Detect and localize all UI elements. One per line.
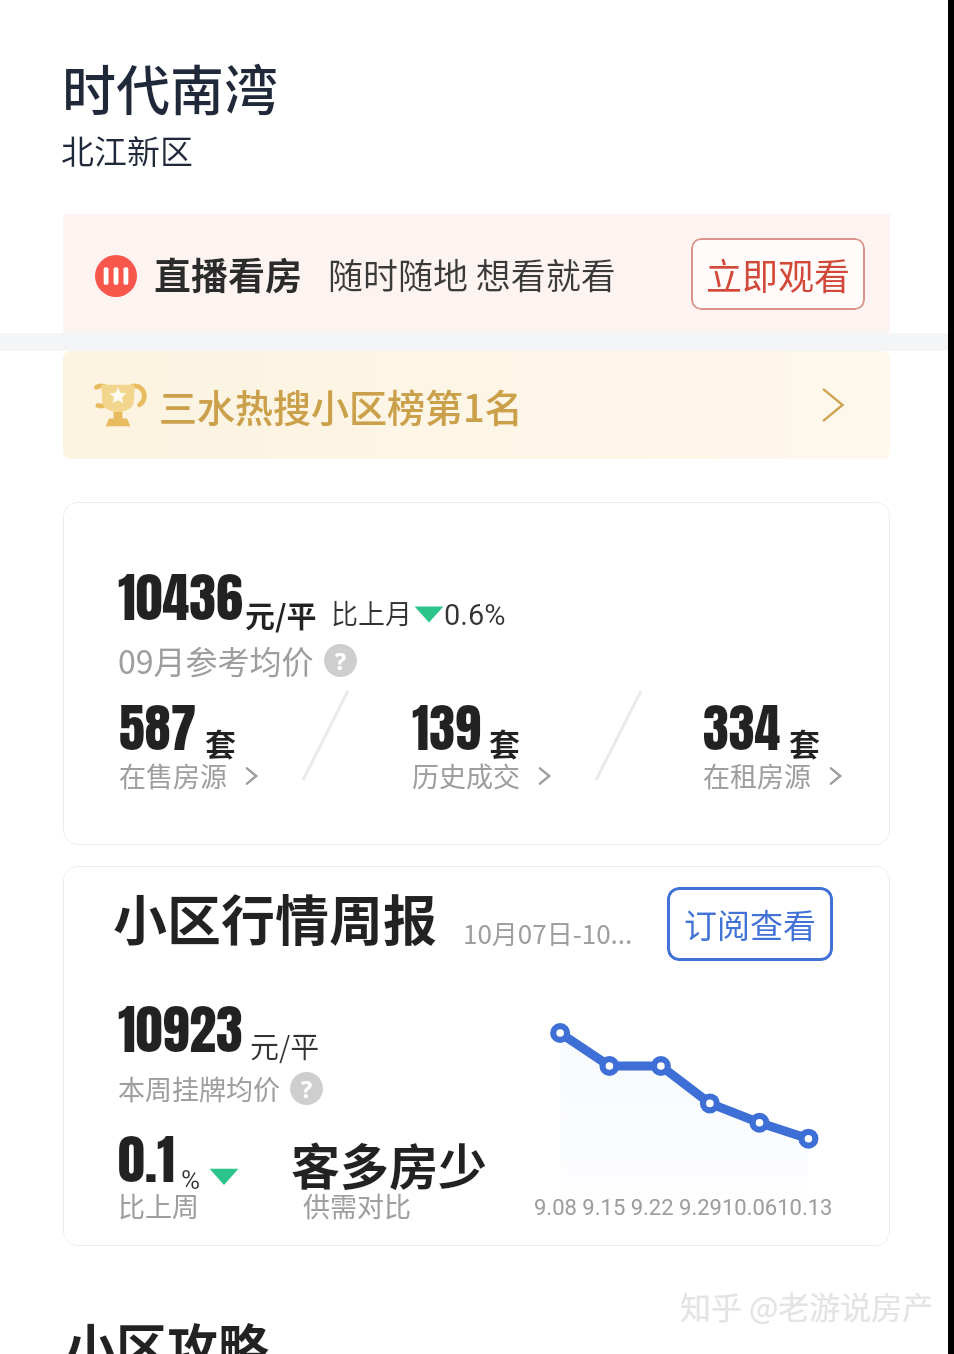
staticText: 小区行情周报 <box>113 878 437 956</box>
button[interactable]: 立即观看 <box>691 238 865 310</box>
staticText: 直播看房 <box>154 247 302 301</box>
button[interactable]: 三水热搜小区榜第1名 <box>63 351 890 459</box>
button[interactable]: 直播看房 <box>63 214 890 333</box>
staticText: 三水热搜小区榜第1名 <box>159 378 523 433</box>
staticText: ? <box>335 645 346 676</box>
staticText: 334 <box>703 689 781 767</box>
button[interactable]: 订阅查看 <box>667 887 833 961</box>
staticText: 在租房源 <box>703 756 811 795</box>
button[interactable]: 587 <box>119 689 263 806</box>
staticText: 比上月 <box>331 593 412 632</box>
staticText: 0.6% <box>444 598 506 632</box>
staticText: 元/平 <box>250 1024 320 1066</box>
staticText: 时代南湾 <box>62 48 278 126</box>
button[interactable]: Help <box>324 644 357 677</box>
staticText: 10月07日-10... <box>463 914 633 952</box>
staticText: 元/平 <box>245 592 317 635</box>
staticText: 套 <box>489 720 520 765</box>
staticText: 本周挂牌均价 <box>118 1069 280 1108</box>
staticText: 套 <box>205 720 236 765</box>
staticText: 0.1 <box>118 1118 175 1199</box>
staticText: 知乎 @老游说房产 <box>680 1283 934 1328</box>
staticText: 立即观看 <box>706 248 851 300</box>
button[interactable]: Help <box>290 1072 323 1105</box>
staticText: 供需对比 <box>303 1186 411 1225</box>
staticText: 在售房源 <box>119 756 227 795</box>
staticText: 比上周 <box>118 1186 199 1225</box>
staticText: 历史成交 <box>412 756 520 795</box>
staticText: 套 <box>789 720 820 765</box>
staticText: 客多房少 <box>291 1128 488 1199</box>
staticText: ? <box>301 1073 312 1104</box>
staticText: 北江新区 <box>61 126 193 174</box>
staticText: 9.08 9.15 9.22 9.2910.0610.13 <box>534 1195 833 1221</box>
staticText: 139 <box>412 689 481 767</box>
staticText: 10436 <box>118 556 243 637</box>
staticText: 587 <box>119 689 197 767</box>
staticText: % <box>181 1165 201 1195</box>
staticText: 10923 <box>118 988 243 1069</box>
staticText: 小区攻略 <box>65 1308 270 1354</box>
staticText: 09月参考均价 <box>118 637 314 683</box>
staticText: 随时随地 想看就看 <box>328 248 616 299</box>
button[interactable]: 334 <box>703 689 847 806</box>
staticText: 订阅查看 <box>684 900 816 948</box>
button[interactable]: 139 <box>412 689 556 806</box>
